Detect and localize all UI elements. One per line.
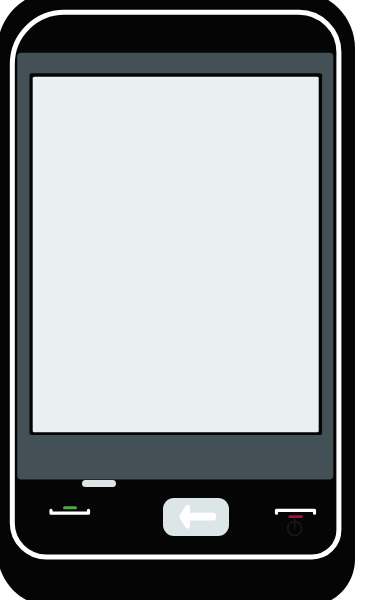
button[interactable]: Back: [163, 498, 229, 536]
button[interactable]: Menu: [44, 500, 96, 522]
button[interactable]: Power: [272, 503, 319, 539]
